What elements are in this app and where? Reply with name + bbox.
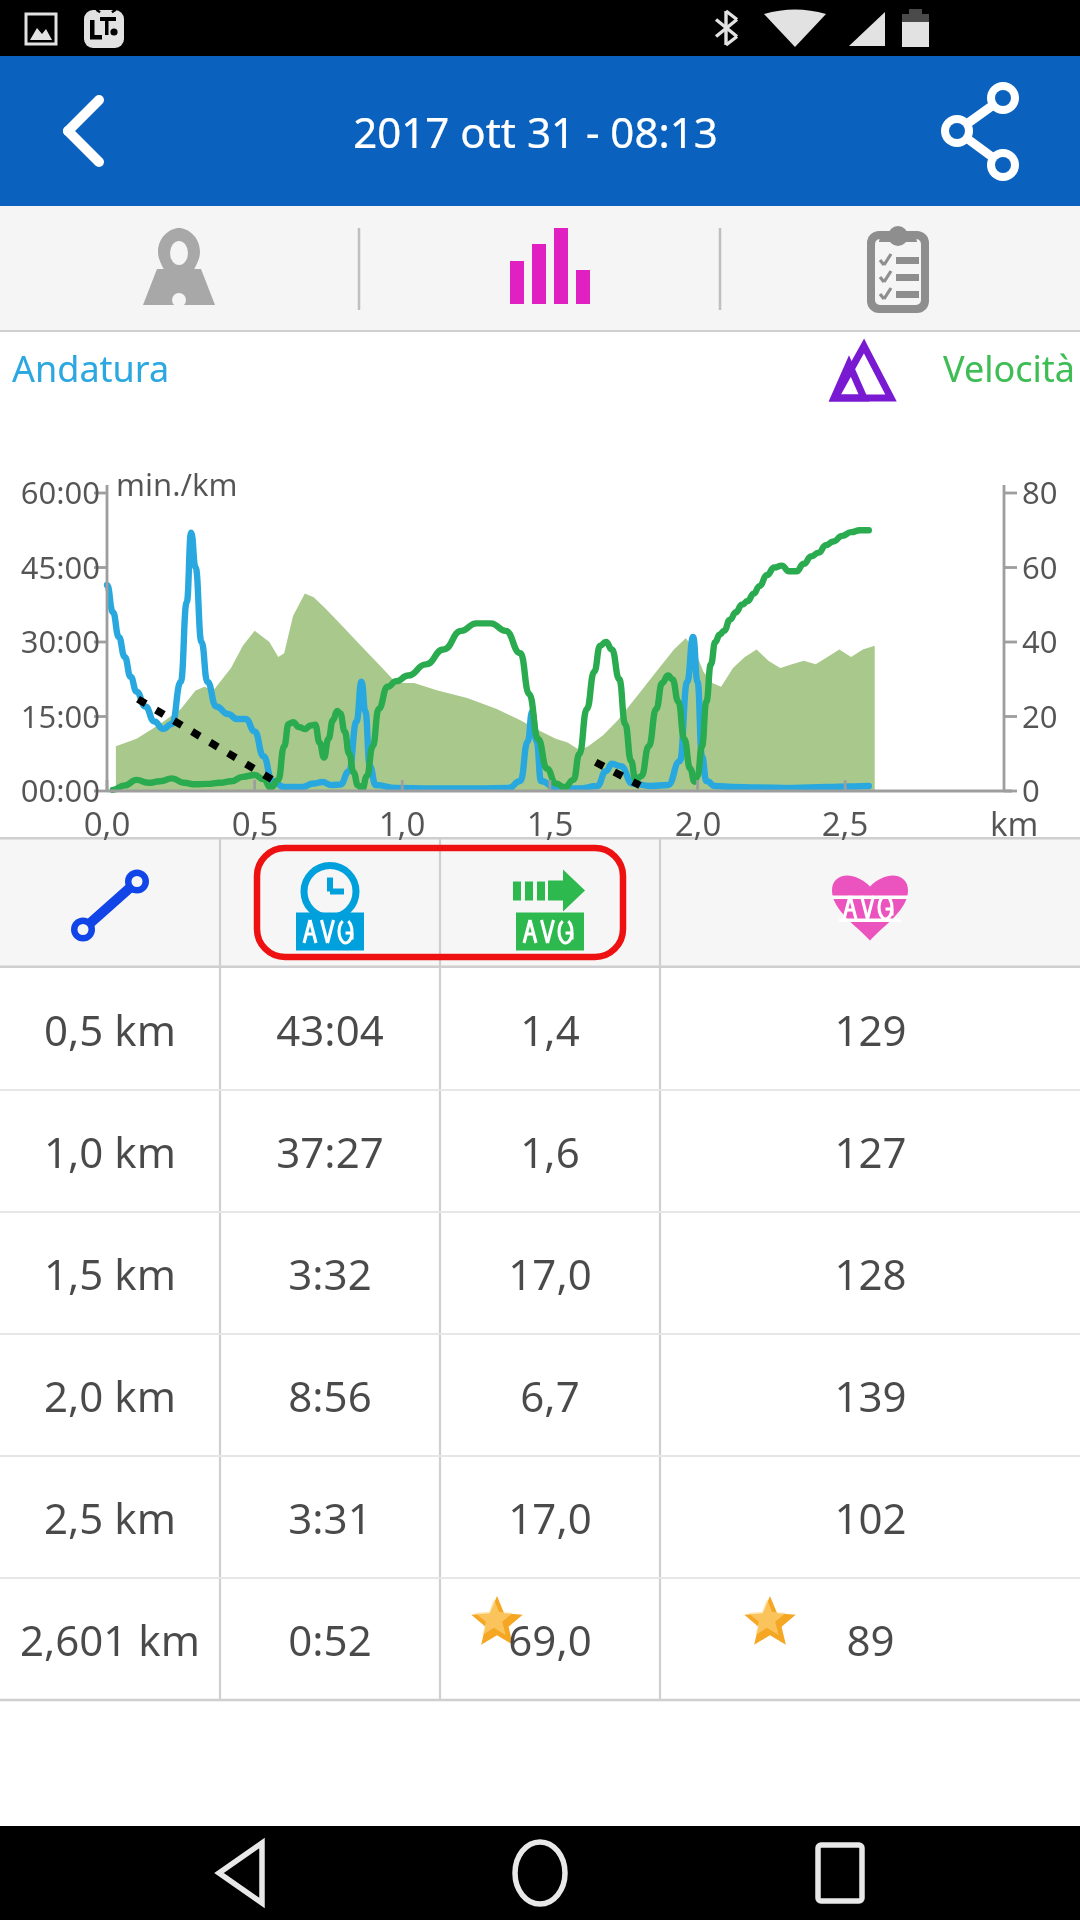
button[interactable]: Velocità <box>943 344 1076 393</box>
staticText: 2,601 km <box>20 1611 200 1668</box>
staticText: 60:00 <box>0 471 100 513</box>
staticText: 139 <box>834 1367 907 1424</box>
staticText: 60 <box>1022 546 1058 588</box>
staticText: km <box>990 801 1039 846</box>
button[interactable]: 0,5 km <box>0 968 1080 1090</box>
staticText: 1,5 km <box>44 1245 176 1302</box>
staticText: 00:00 <box>0 769 100 811</box>
button[interactable]: Average heart rate <box>660 837 1080 968</box>
staticText: 0,5 km <box>44 1001 176 1058</box>
staticText: 89 <box>846 1611 895 1668</box>
staticText: 2,5 km <box>44 1489 176 1546</box>
button[interactable]: Back <box>0 1826 360 1920</box>
staticText: 43:04 <box>276 1001 384 1058</box>
staticText: 40 <box>1022 620 1058 662</box>
staticText: 0,5 <box>222 801 288 846</box>
staticText: 1,6 <box>520 1123 580 1180</box>
staticText: 127 <box>834 1123 907 1180</box>
staticText: 80 <box>1022 471 1058 513</box>
staticText: 1,0 km <box>44 1123 176 1180</box>
staticText: 1,5 <box>517 801 583 846</box>
button[interactable]: Back <box>0 56 150 206</box>
staticText: 37:27 <box>276 1123 384 1180</box>
button[interactable]: Andatura <box>12 344 170 393</box>
button[interactable]: Home <box>360 1826 720 1920</box>
staticText: min./km <box>116 463 238 505</box>
staticText: 30:00 <box>0 620 100 662</box>
staticText: 69,0 <box>508 1611 592 1668</box>
staticText: 6,7 <box>520 1367 580 1424</box>
staticText: 3:31 <box>288 1489 372 1546</box>
button[interactable]: 2,0 km <box>0 1334 1080 1456</box>
staticText: 45:00 <box>0 546 100 588</box>
button[interactable]: Map <box>0 206 360 332</box>
staticText: 3:32 <box>288 1245 372 1302</box>
button[interactable]: 1,5 km <box>0 1212 1080 1334</box>
button[interactable]: 2,5 km <box>0 1456 1080 1578</box>
staticText: 2,5 <box>812 801 878 846</box>
staticText: 2,0 km <box>44 1367 176 1424</box>
staticText: 1,0 <box>369 801 435 846</box>
button[interactable]: Laps <box>720 206 1080 332</box>
button[interactable]: Recents <box>720 1826 1080 1920</box>
button[interactable]: Distance <box>0 837 220 968</box>
staticText: 20 <box>1022 695 1058 737</box>
staticText: 8:56 <box>288 1367 372 1424</box>
staticText: 129 <box>834 1001 907 1058</box>
button[interactable]: Average speed <box>440 837 660 968</box>
button[interactable]: Share <box>920 56 1080 206</box>
staticText: 15:00 <box>0 695 100 737</box>
staticText: 128 <box>834 1245 907 1302</box>
staticText: 2017 ott 31 - 08:13 <box>353 103 718 160</box>
staticText: 0:52 <box>288 1611 372 1668</box>
staticText: 0,0 <box>74 801 140 846</box>
staticText: 17,0 <box>508 1489 592 1546</box>
button[interactable]: Average pace <box>220 837 440 968</box>
staticText: 2,0 <box>665 801 731 846</box>
button[interactable]: 2,601 km <box>0 1578 1080 1700</box>
button[interactable]: Charts <box>360 206 720 332</box>
staticText: 102 <box>834 1489 907 1546</box>
staticText: 17,0 <box>508 1245 592 1302</box>
staticText: 1,4 <box>520 1001 580 1058</box>
button[interactable]: 1,0 km <box>0 1090 1080 1212</box>
staticText: 0 <box>1022 769 1040 811</box>
